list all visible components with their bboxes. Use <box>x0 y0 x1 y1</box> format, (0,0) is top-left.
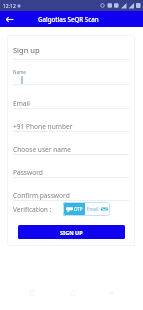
staticText: Email <box>13 99 30 108</box>
staticText: Sign up <box>13 45 40 55</box>
staticText: Confirm password <box>13 191 70 200</box>
staticText: Name <box>13 69 26 75</box>
button[interactable]: Email <box>85 202 110 216</box>
staticText: Verification : <box>13 205 52 214</box>
staticText: Galgotias SeQR Scan <box>38 15 99 23</box>
staticText: Password <box>13 168 43 177</box>
staticText: Email <box>87 206 99 212</box>
staticText: Choose user name <box>13 145 71 154</box>
button[interactable]: OTP <box>63 202 85 216</box>
button[interactable]: Back <box>2 12 17 27</box>
staticText: SIGN UP <box>60 229 83 236</box>
staticText: 12:12 <box>3 3 16 10</box>
button[interactable]: SIGN UP <box>18 225 125 239</box>
staticText: +91 Phone number <box>13 122 73 131</box>
staticText: OTP <box>74 206 83 212</box>
